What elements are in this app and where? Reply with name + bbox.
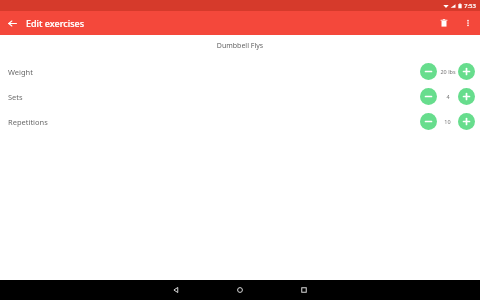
staticText: Sets <box>8 92 23 102</box>
staticText: Weight <box>8 67 33 77</box>
staticText: Edit exercises <box>26 17 85 29</box>
button[interactable]: Decrease Weight <box>420 63 437 80</box>
staticText: 20 lbs <box>440 68 456 75</box>
staticText: 10 <box>444 118 451 125</box>
staticText: Repetitions <box>8 117 48 127</box>
button[interactable]: Decrease Sets <box>420 88 437 105</box>
staticText: 7:53 <box>464 2 476 10</box>
button[interactable]: Home <box>222 280 258 300</box>
button[interactable]: Delete <box>432 11 456 35</box>
staticText: 4 <box>446 93 450 100</box>
button[interactable]: Increase Sets <box>458 88 475 105</box>
button[interactable]: Increase Repetitions <box>458 113 475 130</box>
button[interactable]: Weight <box>0 59 480 84</box>
button[interactable]: More options <box>456 11 480 35</box>
button[interactable]: Sets <box>0 84 480 109</box>
button[interactable]: Repetitions <box>0 109 480 134</box>
button[interactable]: Recents <box>286 280 322 300</box>
staticText: Dumbbell Flys <box>0 41 480 51</box>
button[interactable]: Increase Weight <box>458 63 475 80</box>
button[interactable]: Back <box>158 280 194 300</box>
button[interactable]: Back <box>0 11 24 35</box>
button[interactable]: Decrease Repetitions <box>420 113 437 130</box>
